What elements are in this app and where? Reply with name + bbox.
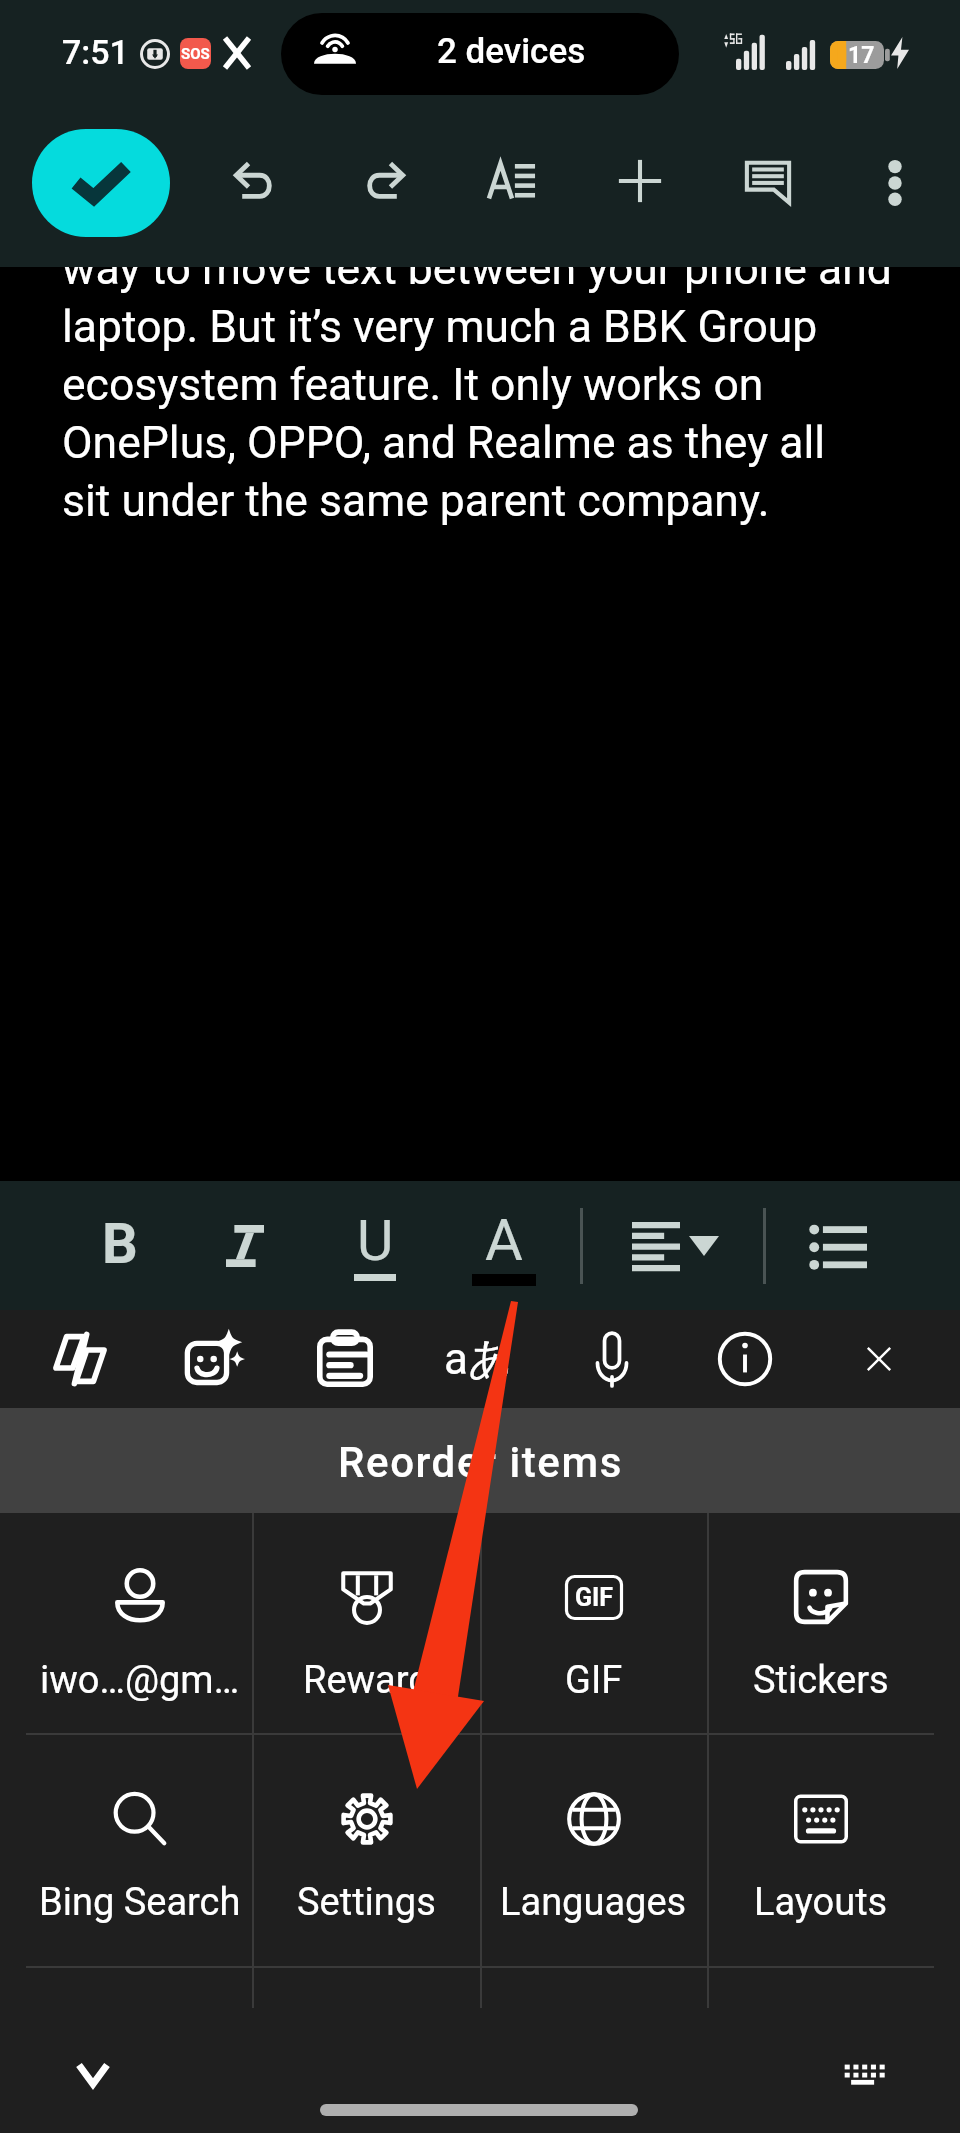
button[interactable]: Languages	[480, 1735, 707, 1793]
button[interactable]: GIF	[480, 1513, 707, 1571]
button[interactable]: Collapse keyboard	[45, 2026, 141, 2122]
button[interactable]: Bold	[72, 1196, 168, 1292]
button[interactable]: Language	[429, 1310, 527, 1408]
staticText: GIF	[575, 1583, 614, 1612]
button[interactable]: Comments	[720, 133, 816, 229]
staticText: 2 devices	[437, 31, 586, 72]
staticText: 17	[848, 42, 875, 69]
button[interactable]: Underline	[327, 1198, 423, 1294]
staticText: Settings	[297, 1880, 436, 1925]
staticText: U	[357, 1208, 394, 1274]
staticText: iwo…@gm…	[40, 1658, 240, 1703]
staticText: GIF	[565, 1658, 623, 1703]
button[interactable]: Text formatting	[464, 133, 560, 229]
button[interactable]: SwiftKey	[31, 1310, 129, 1408]
button[interactable]: Stickers	[707, 1513, 934, 1571]
staticText: Languages	[500, 1880, 687, 1925]
button[interactable]: Switch keyboard	[816, 2025, 912, 2121]
button[interactable]: 2 devices connected	[281, 13, 679, 95]
button[interactable]: More options	[847, 133, 943, 229]
staticText: Bing Search	[39, 1880, 241, 1925]
button[interactable]: Italic	[197, 1198, 293, 1294]
button[interactable]: Text colour	[456, 1198, 552, 1294]
button[interactable]: Clipboard	[296, 1310, 394, 1408]
button[interactable]: Done	[32, 129, 170, 237]
staticText: A	[485, 1206, 523, 1274]
staticText: way to move text between your phone and …	[62, 267, 892, 527]
staticText: Stickers	[753, 1658, 889, 1703]
button[interactable]: Add	[592, 133, 688, 229]
button[interactable]: Voice input	[563, 1310, 661, 1408]
button[interactable]: Bullet list	[790, 1198, 886, 1294]
button[interactable]: iwo…@gm…	[26, 1513, 253, 1571]
button[interactable]: Emoji	[163, 1310, 261, 1408]
staticText: 7:51	[62, 32, 129, 72]
button[interactable]: Alignment	[607, 1194, 737, 1298]
staticText: aあ	[444, 1332, 513, 1387]
button[interactable]: Reward	[253, 1513, 480, 1571]
button[interactable]: Redo	[335, 133, 431, 229]
staticText: Layouts	[754, 1880, 888, 1925]
staticText: Reorder items	[338, 1438, 623, 1487]
button[interactable]: Undo	[208, 133, 304, 229]
staticText: B	[102, 1211, 138, 1277]
button[interactable]: Bing Search	[26, 1735, 253, 1793]
button[interactable]: Info	[696, 1310, 794, 1408]
staticText: Reward	[303, 1658, 430, 1703]
staticText: SOS	[181, 45, 210, 63]
button[interactable]: Settings	[253, 1735, 480, 1793]
button[interactable]: Close	[830, 1310, 928, 1408]
